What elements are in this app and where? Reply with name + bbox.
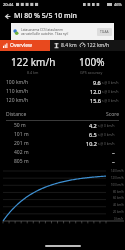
staticText: 20:44 xyxy=(3,2,14,7)
staticText: s @ 0 km/h xyxy=(98,142,115,146)
staticText: 40 km/h xyxy=(113,203,124,207)
staticText: 122 km/h xyxy=(11,55,56,69)
button[interactable]: TILAA xyxy=(100,30,109,34)
staticText: 4.2 xyxy=(89,122,97,129)
staticText: s @ 0 km/h xyxy=(102,81,119,85)
staticText: 101 m xyxy=(14,131,29,138)
button[interactable]: Overview xyxy=(0,40,50,51)
staticText: s @ 0 km/h xyxy=(98,133,115,137)
staticText: 120 km/h xyxy=(111,176,124,180)
staticText: TILAA xyxy=(100,30,109,34)
staticText: 805 m xyxy=(14,158,29,165)
staticText: 8.4 km xyxy=(61,42,77,49)
staticText: 120 km/h xyxy=(6,97,29,104)
staticText: s @ 0 km/h xyxy=(102,99,119,103)
button[interactable]: 50 m xyxy=(6,121,119,130)
staticText: s @ 0 km/h xyxy=(98,124,115,128)
staticText: 0 km/h xyxy=(114,217,124,221)
staticText: s @ 0 km/h xyxy=(102,90,119,94)
staticText: 8.4 km xyxy=(27,70,39,75)
staticText: 50 m xyxy=(14,122,26,129)
button[interactable]: 8.4 km xyxy=(50,40,125,51)
staticText: 60 km/h xyxy=(113,196,124,200)
staticText: 6.5 xyxy=(89,131,97,138)
button[interactable]: 805 m xyxy=(6,157,119,166)
staticText: Overview xyxy=(10,42,32,49)
staticText: 12.0 xyxy=(90,88,101,95)
staticText: 110 km/h xyxy=(6,88,29,95)
staticText: – xyxy=(112,158,115,165)
staticText: 46% xyxy=(114,2,122,7)
button[interactable]: 100 km/h xyxy=(6,78,119,87)
staticText: 15.6 xyxy=(90,97,101,104)
staticText: 122 km/h xyxy=(87,42,110,49)
staticText: – xyxy=(112,149,115,156)
staticText: Distance xyxy=(6,111,27,118)
staticText: 201 m xyxy=(14,140,29,147)
staticText: Latauasema CCS lataukseen xyxy=(21,28,63,32)
staticText: Mi 80 % 5/5 10 min xyxy=(14,11,78,21)
staticText: Score xyxy=(106,111,119,118)
staticText: GPS accuracy xyxy=(80,70,103,75)
staticText: varustelluille autoihin. Tilaa nyt! xyxy=(21,32,69,36)
button[interactable]: 201 m xyxy=(6,139,119,148)
button[interactable]: 101 m xyxy=(6,130,119,139)
staticText: 100% xyxy=(79,55,105,69)
button[interactable]: Latauasema CCS lataukseen xyxy=(11,23,114,40)
button[interactable]: 402 m xyxy=(6,148,119,157)
staticText: 100 km/h xyxy=(6,79,29,86)
staticText: 402 m xyxy=(14,149,29,156)
button[interactable]: 120 km/h xyxy=(6,96,119,105)
button[interactable]: 110 km/h xyxy=(6,87,119,96)
button[interactable]: Back xyxy=(0,9,14,23)
staticText: 140 km/h xyxy=(111,169,124,173)
staticText: 9.6 xyxy=(93,79,101,86)
staticText: 20 km/h xyxy=(113,210,124,214)
staticText: 10.2 xyxy=(86,140,97,147)
staticText: 100 km/h xyxy=(111,183,124,187)
staticText: 80 km/h xyxy=(113,190,124,194)
